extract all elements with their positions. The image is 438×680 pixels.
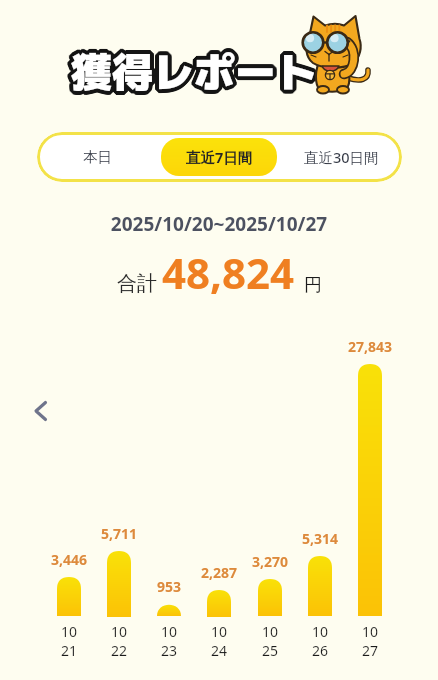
button[interactable]: Previous period [28,399,53,424]
staticText: 獲得レポート [73,41,319,98]
staticText: 10 [29,622,109,641]
button[interactable]: 直近30日間 [283,138,399,176]
staticText: 直近7日間 [186,147,253,167]
staticText: 獲得レポート [73,44,319,101]
staticText: 獲得レポート [71,40,317,97]
staticText: 獲得レポート [72,47,318,104]
button[interactable]: 本日 [40,138,155,176]
staticText: 22 [79,641,159,660]
staticText: 5,314 [280,529,360,548]
staticText: 獲得レポート [69,44,315,101]
staticText: 獲得レポート [72,39,318,96]
staticText: 獲得レポート [74,45,320,102]
staticText: 獲得レポート [72,44,318,101]
staticText: 10 [280,622,360,641]
staticText: 26 [280,641,360,660]
staticText: 25 [230,641,310,660]
staticText: 獲得レポート [71,47,317,104]
staticText: 獲得レポート [71,43,317,100]
staticText: 3,446 [29,550,109,569]
staticText: 10 [179,622,259,641]
staticText: 獲得レポート [72,40,318,97]
staticText: 2025/10/20~2025/10/27 [0,211,438,237]
staticText: 獲得レポート [68,44,314,101]
staticText: 獲得レポート [72,45,318,102]
staticText: 獲得レポート [71,41,317,98]
staticText: 24 [179,641,259,660]
button[interactable]: 直近7日間 [161,138,277,176]
staticText: 獲得レポート [70,40,316,97]
staticText: 獲得レポート [71,45,317,102]
staticText: 獲得レポート [71,42,317,99]
staticText: 獲得レポート [71,43,317,100]
staticText: 合計 [117,271,157,296]
staticText: 獲得レポート [72,41,318,98]
staticText: 円 [304,274,322,297]
staticText: 獲得レポート [67,44,313,101]
staticText: 獲得レポート [75,44,321,101]
staticText: 獲得レポート [73,45,319,102]
staticText: 獲得レポート [69,41,315,98]
staticText: 獲得レポート [72,43,318,100]
staticText: 獲得レポート [73,46,319,103]
staticText: 10 [330,622,410,641]
staticText: 獲得レポート [73,42,319,99]
staticText: 獲得レポート [70,46,316,103]
staticText: 獲得レポート [68,45,314,102]
staticText: 21 [29,641,109,660]
staticText: 27,843 [330,337,410,356]
staticText: 10 [230,622,310,641]
staticText: 獲得レポート [70,42,316,99]
staticText: 獲得レポート [72,42,318,99]
staticText: 本日 [83,148,112,166]
staticText: 獲得レポート [69,43,315,100]
staticText: 獲得レポート [70,39,316,96]
staticText: 獲得レポート [67,43,313,100]
staticText: 48,824 [162,244,295,301]
staticText: 獲得レポート [68,42,314,99]
staticText: 獲得レポート [70,45,316,102]
staticText: 5,711 [79,524,159,543]
staticText: 獲得レポート [70,47,316,104]
staticText: 獲得レポート [69,40,315,97]
staticText: 獲得レポート [67,42,313,99]
staticText: 獲得レポート [70,44,316,101]
staticText: 獲得レポート [75,42,321,99]
staticText: 獲得レポート [69,46,315,103]
staticText: 獲得レポート [71,46,317,103]
staticText: 2,287 [179,563,259,582]
staticText: 10 [129,622,209,641]
staticText: 獲得レポート [74,42,320,99]
staticText: 獲得レポート [75,43,321,100]
staticText: 獲得レポート [72,46,318,103]
staticText: 獲得レポート [73,43,319,100]
staticText: 953 [129,577,209,596]
staticText: 獲得レポート [74,41,320,98]
staticText: 獲得レポート [68,41,314,98]
staticText: 獲得レポート [70,43,316,100]
staticText: 10 [79,622,159,641]
staticText: 直近30日間 [304,147,379,167]
staticText: 3,270 [230,552,310,571]
staticText: 23 [129,641,209,660]
staticText: 獲得レポート [68,43,314,100]
staticText: 獲得レポート [71,44,317,101]
staticText: 獲得レポート [69,45,315,102]
staticText: 獲得レポート [73,40,319,97]
staticText: 獲得レポート [69,42,315,99]
staticText: 獲得レポート [74,43,320,100]
staticText: 獲得レポート [74,44,320,101]
staticText: 獲得レポート [71,39,317,96]
staticText: 27 [330,641,410,660]
staticText: 獲得レポート [70,41,316,98]
